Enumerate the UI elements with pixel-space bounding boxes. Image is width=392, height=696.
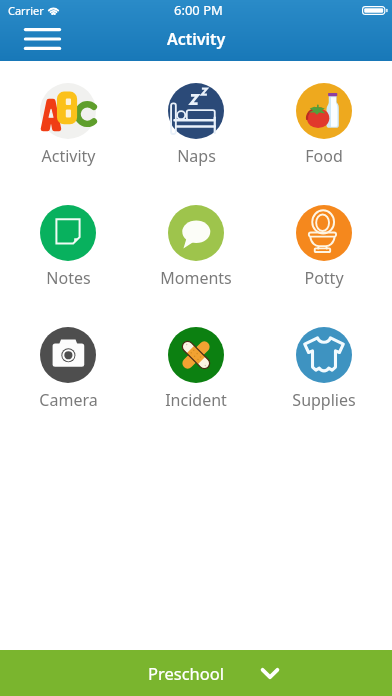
staticText: Potty bbox=[304, 267, 344, 289]
staticText: Incident bbox=[165, 389, 227, 411]
staticText: Camera bbox=[39, 389, 98, 411]
staticText: 6:00 PM bbox=[174, 1, 223, 19]
button[interactable]: Menu bbox=[18, 19, 67, 60]
staticText: Notes bbox=[46, 267, 91, 289]
button[interactable]: Supplies bbox=[260, 327, 388, 411]
button[interactable]: Notes bbox=[4, 205, 132, 289]
button[interactable]: Preschool bbox=[0, 650, 392, 696]
staticText: Carrier bbox=[8, 3, 44, 18]
button[interactable]: Incident bbox=[132, 327, 260, 411]
staticText: Naps bbox=[177, 145, 216, 167]
staticText: Activity bbox=[167, 28, 226, 50]
staticText: Food bbox=[305, 145, 343, 167]
button[interactable]: Moments bbox=[132, 205, 260, 289]
staticText: Activity bbox=[41, 145, 96, 167]
button[interactable]: Food bbox=[260, 83, 388, 167]
staticText: Supplies bbox=[292, 389, 356, 411]
button[interactable]: Naps bbox=[132, 83, 260, 167]
button[interactable]: Camera bbox=[4, 327, 132, 411]
staticText: Moments bbox=[160, 267, 232, 289]
button[interactable]: Activity bbox=[4, 83, 132, 167]
staticText: Preschool bbox=[148, 662, 225, 684]
button[interactable]: Potty bbox=[260, 205, 388, 289]
